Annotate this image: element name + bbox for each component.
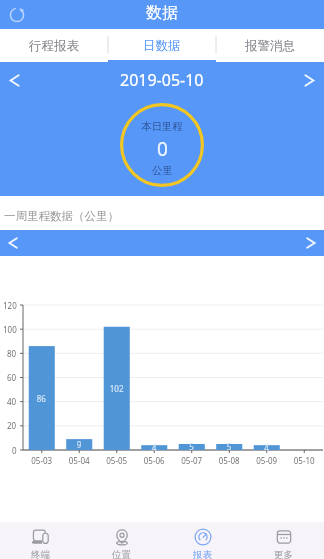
staticText: 0 <box>157 136 168 162</box>
button[interactable]: Previous week <box>0 230 26 256</box>
button[interactable]: 位置 <box>81 522 162 559</box>
button[interactable]: 日数据 <box>108 29 216 62</box>
staticText: 一周里程数据（公里） <box>4 209 119 223</box>
other: 终端 <box>32 528 50 546</box>
button[interactable]: 更多 <box>243 522 324 559</box>
button[interactable]: Refresh <box>5 3 29 27</box>
button[interactable]: 终端 <box>0 522 81 559</box>
staticText: 报警消息 <box>245 38 295 54</box>
staticText: 位置 <box>112 549 131 559</box>
staticText: 日数据 <box>143 38 181 54</box>
staticText: 2019-05-10 <box>120 69 204 91</box>
other: 更多 <box>275 528 293 546</box>
staticText: 更多 <box>274 549 293 559</box>
button[interactable]: 报警消息 <box>216 29 324 62</box>
button[interactable]: 报表 <box>162 522 243 559</box>
button[interactable]: 行程报表 <box>0 29 108 62</box>
staticText: 行程报表 <box>29 38 79 54</box>
button[interactable]: Previous day <box>0 66 29 95</box>
staticText: 本日里程 <box>141 120 183 133</box>
staticText: 数据 <box>146 3 178 23</box>
staticText: 公里 <box>152 164 173 177</box>
button[interactable]: Next week <box>298 230 324 256</box>
other: 报表 <box>194 528 212 546</box>
button[interactable]: Next day <box>295 66 324 95</box>
other: 位置 <box>113 528 131 546</box>
staticText: 终端 <box>31 549 50 559</box>
staticText: 报表 <box>193 549 212 559</box>
